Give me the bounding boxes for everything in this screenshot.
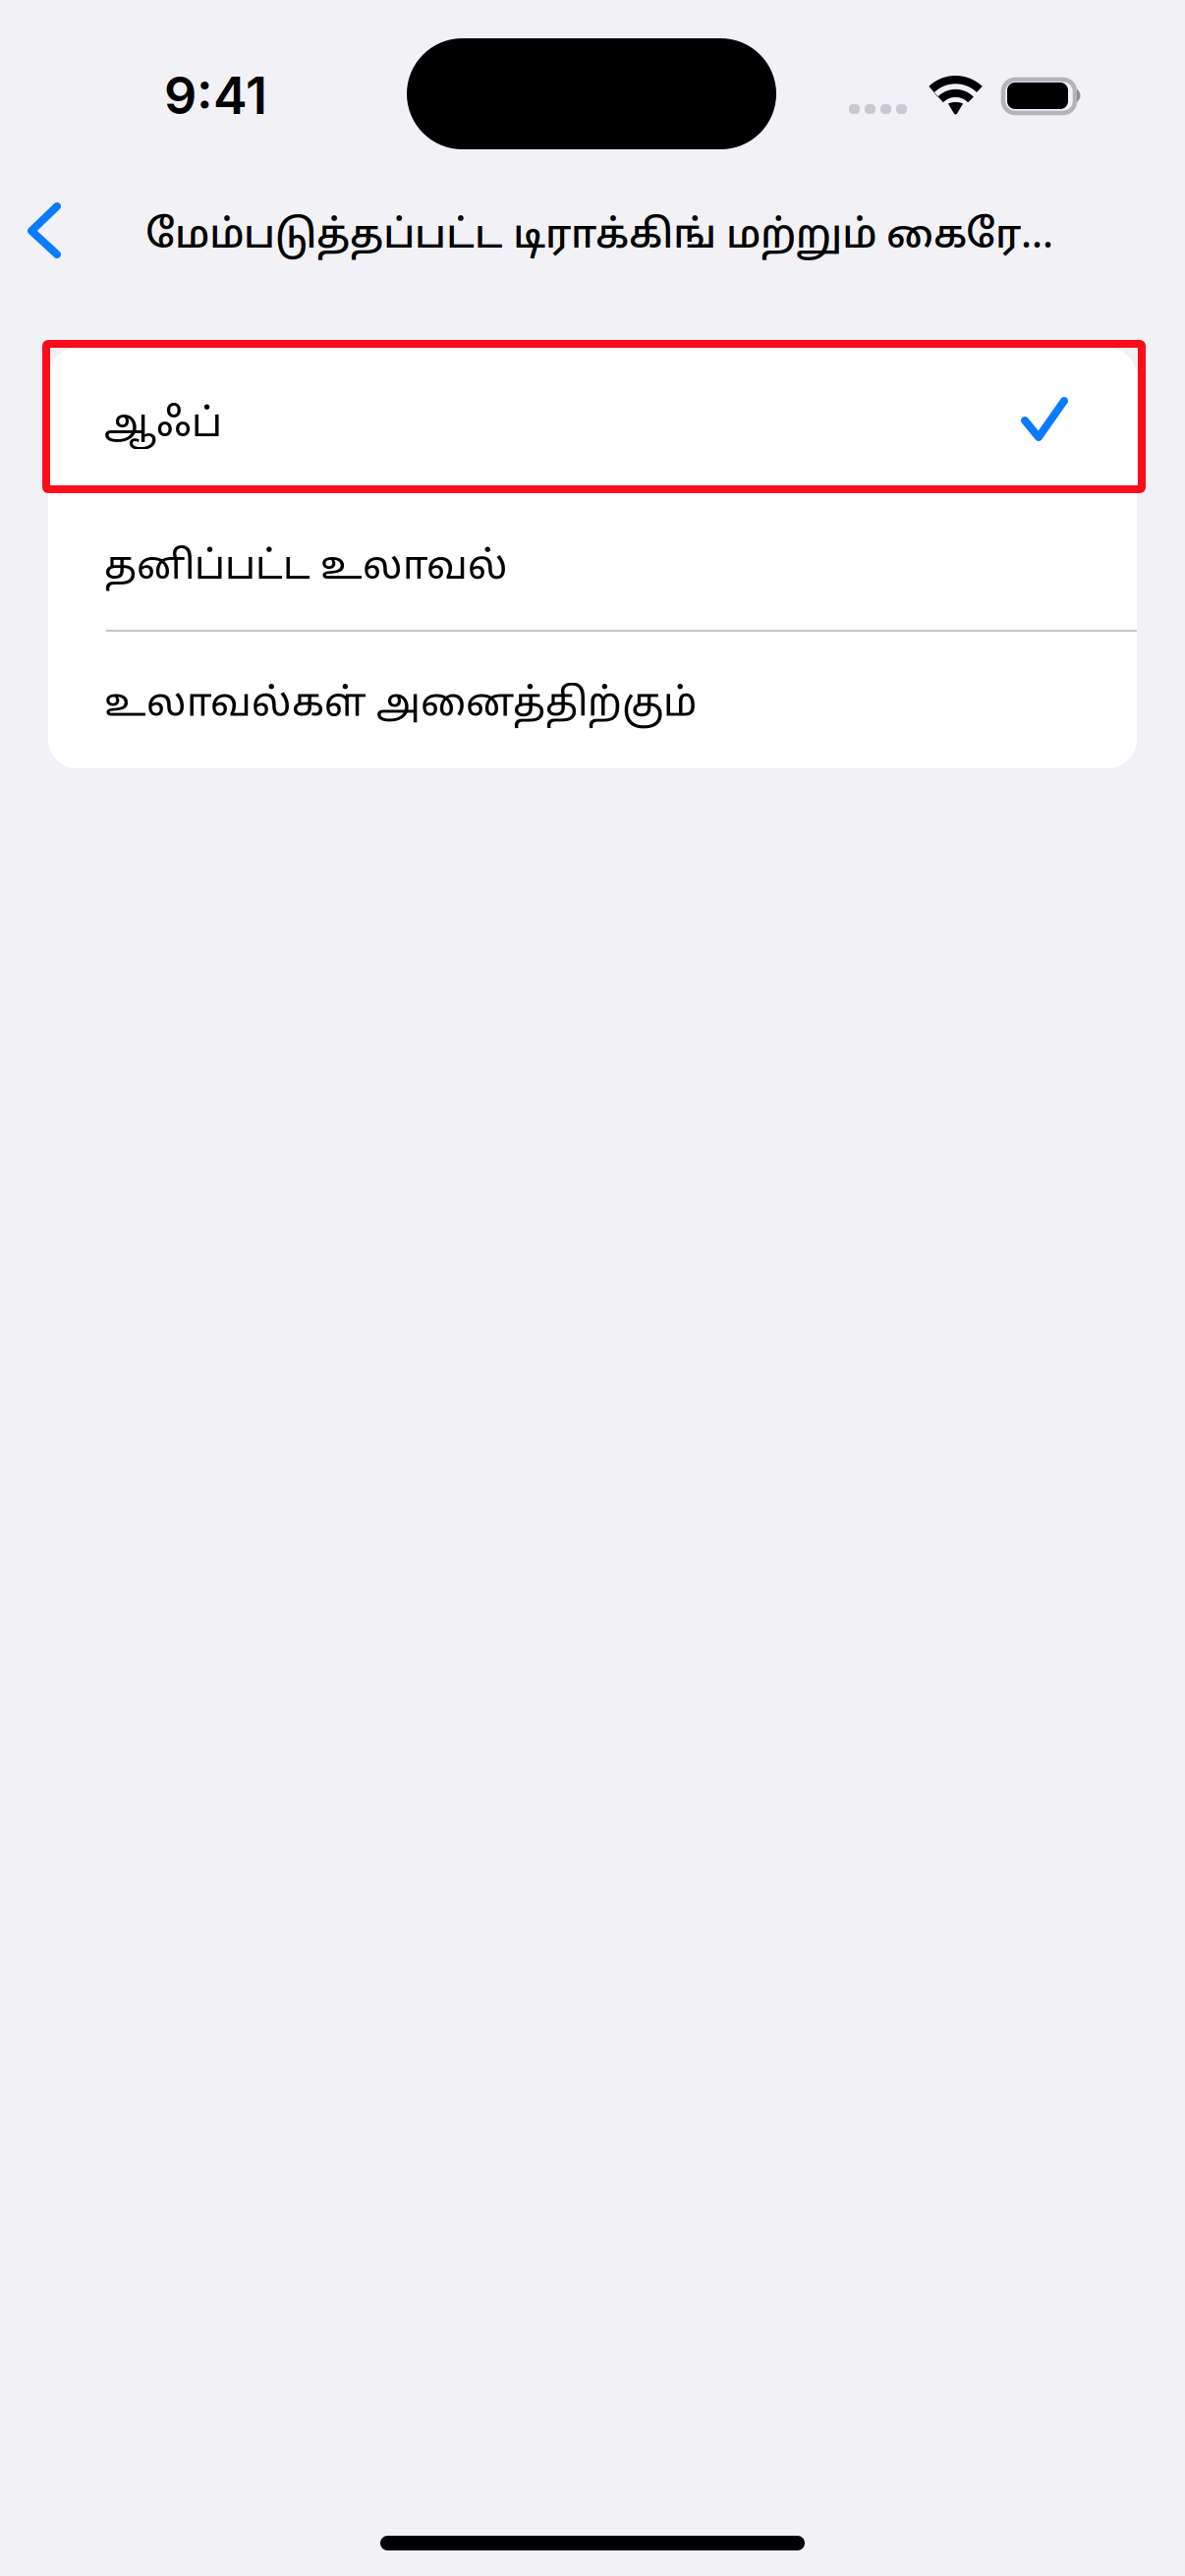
button[interactable]: Back <box>0 163 98 291</box>
staticText: ஆஃப் <box>104 402 222 451</box>
staticText: தனிப்பட்ட உலாவல் <box>104 544 508 593</box>
staticText: 9:41 <box>164 64 267 126</box>
staticText: மேம்படுத்தப்பட்ட டிராக்கிங் மற்றும் கைரே… <box>145 213 1053 262</box>
button[interactable]: உலாவல்கள் அனைத்திற்கும் <box>48 632 1137 768</box>
button[interactable]: தனிப்பட்ட உலாவல் <box>48 487 1137 631</box>
staticText: உலாவல்கள் அனைத்திற்கும் <box>104 682 697 730</box>
button[interactable]: ஆஃப் <box>48 348 1137 487</box>
